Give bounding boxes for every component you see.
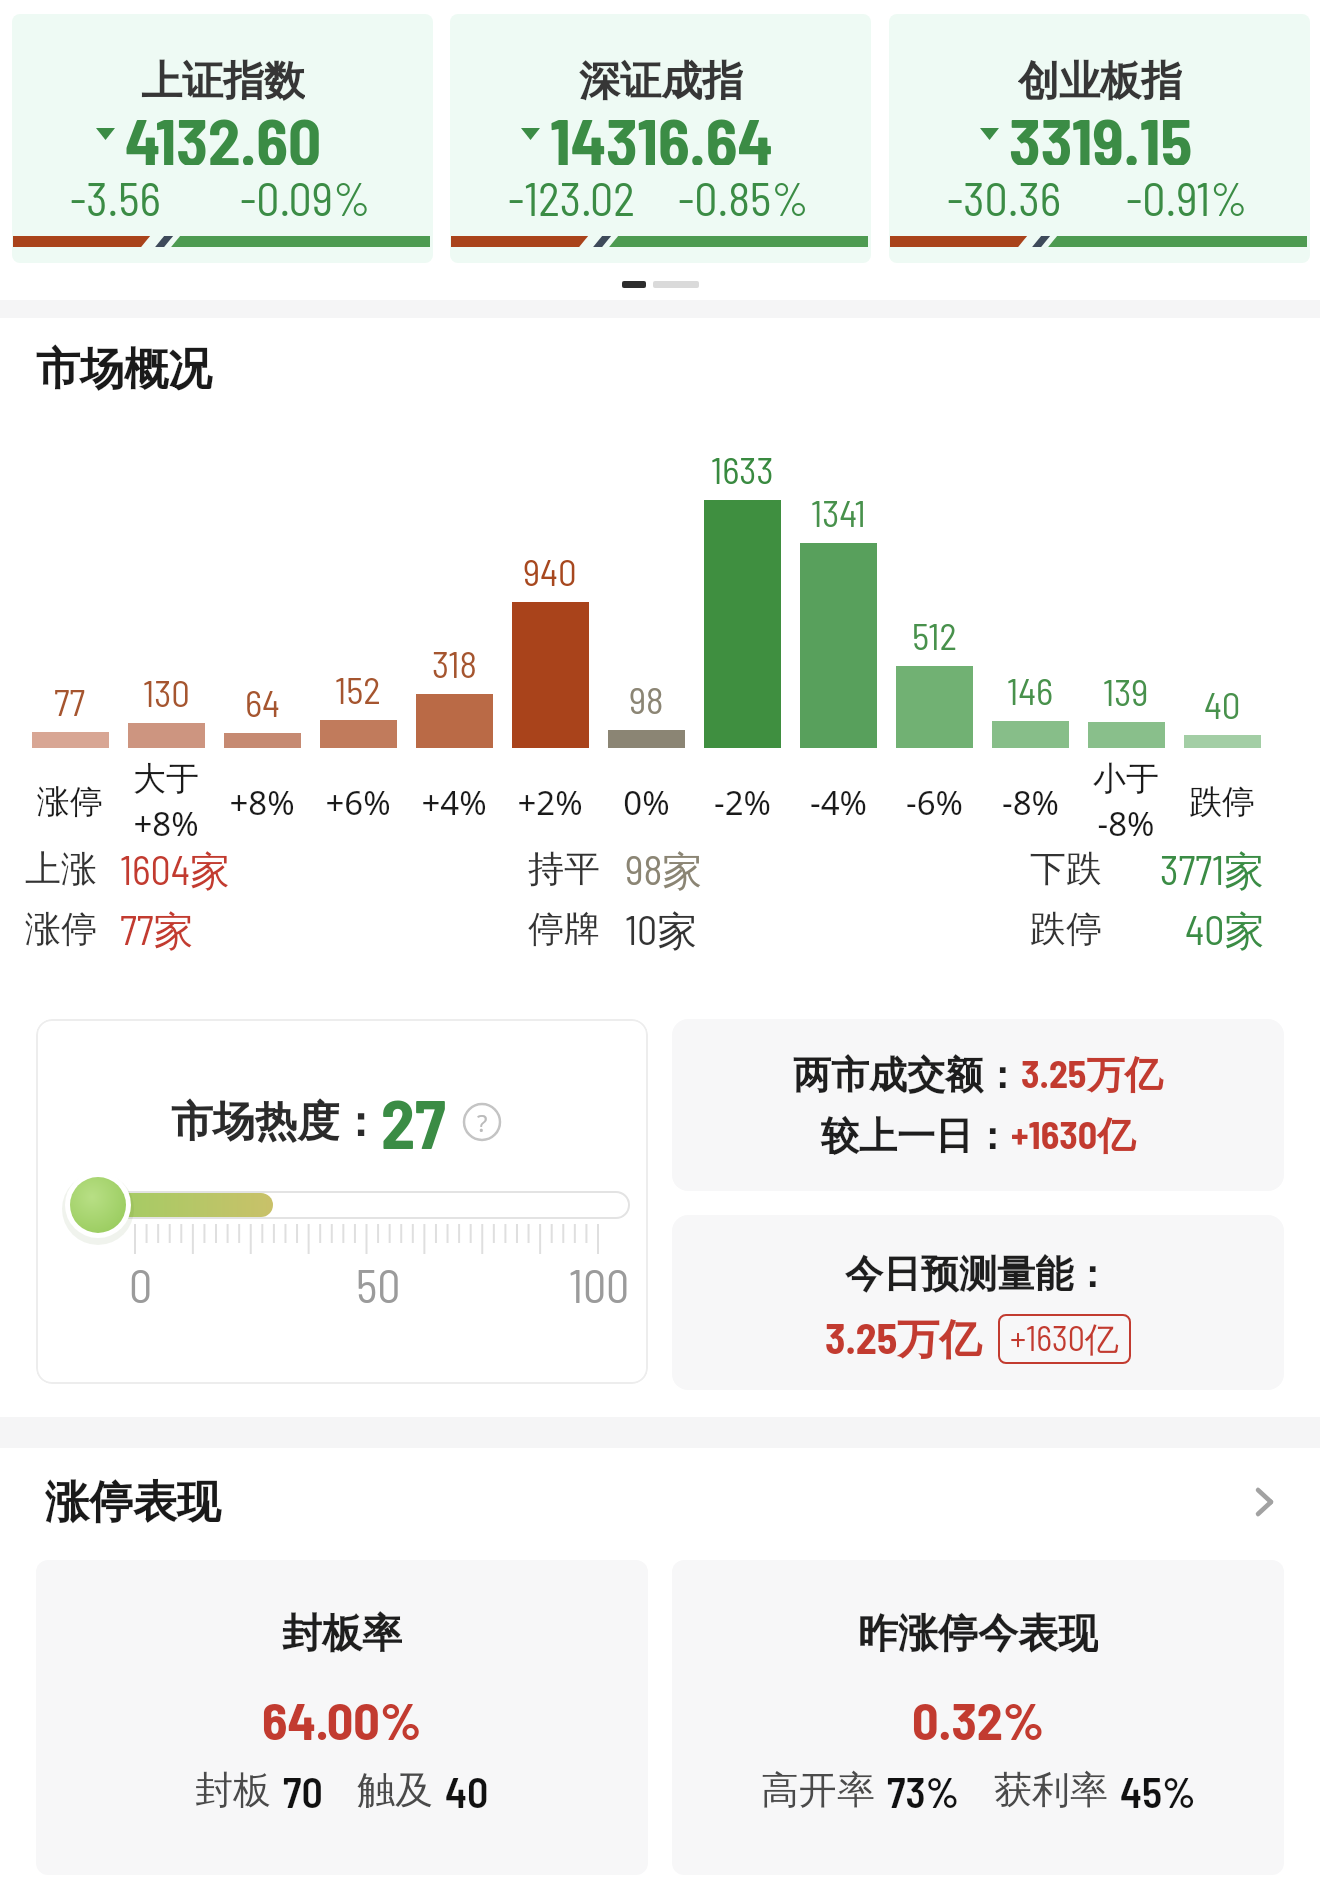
staticText: 昨涨停今表现 xyxy=(858,1608,1098,1656)
staticText: 封板 xyxy=(195,1766,271,1814)
staticText: +2% xyxy=(517,780,583,825)
staticText: -8% xyxy=(1002,780,1059,825)
staticText: 1341 xyxy=(811,490,866,534)
staticText: 市场概况 xyxy=(36,342,212,397)
staticText: 77 xyxy=(54,679,86,723)
staticText: 45% xyxy=(1120,1766,1196,1814)
staticText: 两市成交额： xyxy=(793,1051,1021,1099)
button[interactable]: 市场热度： xyxy=(36,1019,648,1384)
staticText: 40家 xyxy=(1185,905,1265,951)
staticText: -0.09% xyxy=(240,170,371,216)
staticText: 14316.64 xyxy=(550,101,773,165)
staticText: 持平 xyxy=(528,846,600,891)
staticText: 3.25万亿 xyxy=(1021,1050,1163,1099)
staticText: 创业板指 xyxy=(1018,56,1182,106)
staticText: 跌停 xyxy=(1189,781,1255,823)
button[interactable]: 涨停表现 xyxy=(0,1472,1320,1532)
staticText: -3.56 xyxy=(70,170,161,216)
staticText: -4% xyxy=(810,780,867,825)
staticText: 0 xyxy=(129,1257,153,1309)
staticText: 小于 -8% xyxy=(1093,758,1159,846)
button[interactable]: 深证成指 xyxy=(450,14,871,263)
staticText: +6% xyxy=(325,780,391,825)
staticText: -6% xyxy=(906,780,963,825)
staticText: 上涨 xyxy=(25,846,97,891)
staticText: 98家 xyxy=(625,845,703,891)
staticText: 较上一日： xyxy=(821,1112,1011,1160)
button[interactable]: 上证指数 xyxy=(12,14,433,263)
staticText: -0.85% xyxy=(678,170,809,216)
button[interactable]: 昨涨停今表现 xyxy=(672,1560,1284,1875)
staticText: 涨停 xyxy=(25,906,97,951)
staticText: 涨停表现 xyxy=(45,1475,221,1530)
staticText: -0.91% xyxy=(1126,170,1248,216)
staticText: 1604家 xyxy=(120,845,231,891)
staticText: 10家 xyxy=(625,905,698,951)
staticText: 停牌 xyxy=(528,906,600,951)
staticText: 0% xyxy=(623,780,670,825)
staticText: 940 xyxy=(523,549,577,593)
staticText: 152 xyxy=(335,667,381,711)
staticText: 4132.60 xyxy=(125,101,322,165)
staticText: 高开率 xyxy=(761,1766,875,1814)
staticText: +8% xyxy=(229,780,295,825)
staticText: 深证成指 xyxy=(579,56,743,106)
staticText: 40 xyxy=(445,1766,489,1814)
staticText: 封板率 xyxy=(282,1608,402,1656)
button[interactable]: 封板率 xyxy=(36,1560,648,1875)
staticText: -123.02 xyxy=(508,170,635,216)
staticText: 40 xyxy=(1204,682,1241,726)
staticText: 1633 xyxy=(711,447,774,491)
staticText: 70 xyxy=(283,1766,323,1814)
staticText: 100 xyxy=(569,1257,630,1309)
staticText: 3771家 xyxy=(1160,845,1265,891)
staticText: 大于 +8% xyxy=(133,758,199,846)
staticText: 0.32% xyxy=(912,1688,1045,1740)
button[interactable]: 创业板指 xyxy=(889,14,1310,263)
button[interactable]: 今日预测量能： xyxy=(672,1215,1284,1390)
staticText: 512 xyxy=(912,613,957,657)
staticText: -2% xyxy=(714,780,771,825)
staticText: +4% xyxy=(421,780,487,825)
staticText: 获利率 xyxy=(994,1766,1108,1814)
staticText: 涨停 xyxy=(37,781,103,823)
staticText: 130 xyxy=(143,670,190,714)
staticText: +1630亿 xyxy=(1011,1111,1136,1160)
staticText: 139 xyxy=(1103,669,1149,713)
staticText: 27 xyxy=(381,1081,446,1163)
button[interactable]: 两市成交额： xyxy=(672,1019,1284,1191)
staticText: 跌停 xyxy=(1030,906,1102,951)
staticText: 上证指数 xyxy=(141,56,305,106)
staticText: 今日预测量能： xyxy=(845,1250,1111,1298)
staticText: 3.25万亿 xyxy=(825,1312,982,1366)
staticText: 市场热度： xyxy=(171,1096,381,1149)
staticText: -30.36 xyxy=(947,170,1061,216)
staticText: 146 xyxy=(1007,668,1054,712)
staticText: 下跌 xyxy=(1030,846,1102,891)
staticText: ? xyxy=(477,1106,488,1139)
staticText: 50 xyxy=(356,1257,401,1309)
staticText: +1630亿 xyxy=(1010,1317,1119,1361)
staticText: 73% xyxy=(887,1766,960,1814)
staticText: 3319.15 xyxy=(1009,101,1193,165)
staticText: 318 xyxy=(432,641,477,685)
staticText: 触及 xyxy=(357,1766,433,1814)
staticText: 64.00% xyxy=(262,1688,422,1740)
staticText: 77家 xyxy=(120,905,194,951)
staticText: 98 xyxy=(629,677,664,721)
staticText: 64 xyxy=(245,680,280,724)
